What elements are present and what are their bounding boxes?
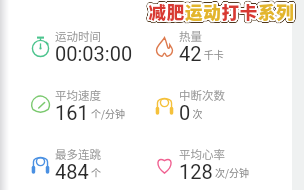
button[interactable]: 最多连跳 bbox=[30, 147, 150, 183]
button[interactable]: 热量 bbox=[154, 29, 274, 65]
button[interactable]: 中断次数 bbox=[154, 88, 274, 124]
button[interactable]: 平均心率 bbox=[154, 147, 274, 183]
button[interactable]: 平均速度 bbox=[30, 88, 150, 124]
button[interactable]: 运动时间 bbox=[30, 29, 150, 65]
